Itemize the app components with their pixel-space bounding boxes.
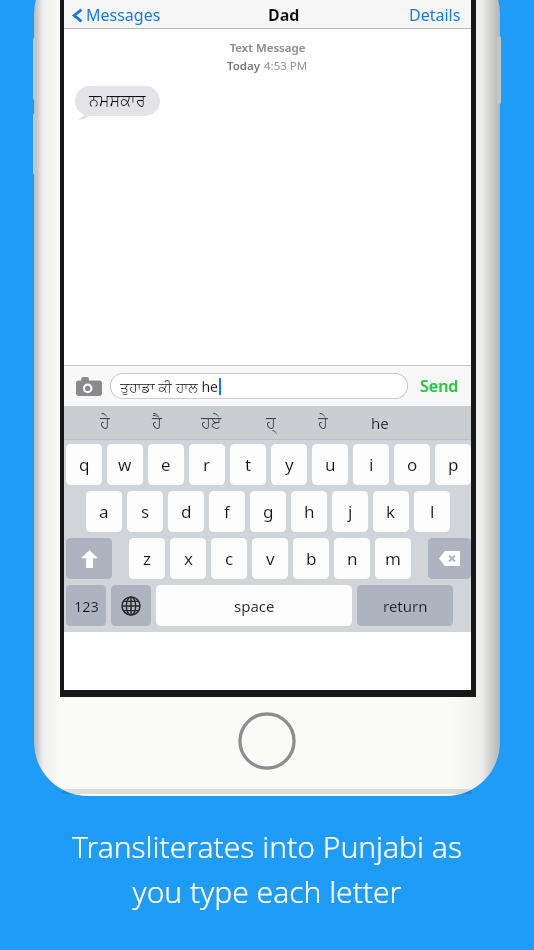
staticText: w xyxy=(118,453,132,476)
button[interactable]: r xyxy=(189,444,225,485)
button[interactable]: f xyxy=(209,491,245,532)
staticText: c xyxy=(225,547,234,570)
staticText: ਨਮਸਕਾਰ xyxy=(89,93,146,109)
staticText: a xyxy=(99,500,109,523)
staticText: y xyxy=(285,453,294,476)
button[interactable]: 123 xyxy=(66,585,106,626)
button[interactable]: ਹਏ xyxy=(190,406,232,440)
button[interactable]: Delete xyxy=(428,538,471,579)
staticText: h xyxy=(304,500,315,523)
staticText: ਹਏ xyxy=(201,415,222,431)
staticText: z xyxy=(143,547,151,570)
button[interactable]: w xyxy=(107,444,143,485)
staticText: Send xyxy=(420,375,459,397)
staticText: Messages xyxy=(86,4,161,26)
staticText: i xyxy=(369,453,374,476)
staticText: e xyxy=(161,453,171,476)
staticText: g xyxy=(263,500,274,523)
staticText: f xyxy=(224,500,230,523)
button[interactable]: ਹੇ xyxy=(84,406,126,440)
staticText: s xyxy=(141,500,150,523)
button[interactable]: ਹੇ xyxy=(302,406,344,440)
button[interactable]: o xyxy=(394,444,430,485)
staticText: v xyxy=(266,547,275,570)
button[interactable]: e xyxy=(148,444,184,485)
staticText: x xyxy=(184,547,193,570)
button[interactable]: z xyxy=(129,538,165,579)
staticText: he xyxy=(371,413,389,433)
staticText: r xyxy=(203,453,211,476)
button[interactable]: ਤੁਹਾਡਾ ਕੀ ਹਾਲ he xyxy=(110,373,408,399)
button[interactable]: Send xyxy=(416,371,463,401)
staticText: m xyxy=(385,547,401,570)
button[interactable]: d xyxy=(168,491,204,532)
button[interactable]: v xyxy=(252,538,288,579)
staticText: Details xyxy=(409,4,461,26)
staticText: Transliterates into Punjabi as you type … xyxy=(72,826,462,912)
button[interactable]: he xyxy=(356,406,404,440)
staticText: n xyxy=(347,547,358,570)
button[interactable]: u xyxy=(312,444,348,485)
button[interactable]: s xyxy=(127,491,163,532)
button[interactable]: g xyxy=(250,491,286,532)
button[interactable]: t xyxy=(230,444,266,485)
staticText: 123 xyxy=(74,596,99,616)
staticText: o xyxy=(407,453,418,476)
button[interactable]: y xyxy=(271,444,307,485)
staticText: Dad xyxy=(268,4,300,26)
staticText: k xyxy=(386,500,396,523)
staticText: ਹੇ xyxy=(318,415,328,431)
button[interactable]: i xyxy=(353,444,389,485)
staticText: ਹ੍ xyxy=(266,415,276,431)
button[interactable]: k xyxy=(373,491,409,532)
staticText: t xyxy=(245,453,252,476)
button[interactable]: Details xyxy=(405,4,465,26)
staticText: p xyxy=(448,453,459,476)
button[interactable]: ਹੈ xyxy=(136,406,178,440)
button[interactable]: x xyxy=(170,538,206,579)
button[interactable]: p xyxy=(435,444,471,485)
button[interactable]: n xyxy=(334,538,370,579)
button[interactable]: j xyxy=(332,491,368,532)
staticText: u xyxy=(325,453,336,476)
button[interactable]: Camera xyxy=(72,371,106,401)
button[interactable]: q xyxy=(66,444,102,485)
staticText: ਹੇ xyxy=(100,415,110,431)
staticText: q xyxy=(79,453,90,476)
staticText: b xyxy=(306,547,317,570)
button[interactable]: a xyxy=(86,491,122,532)
button[interactable]: Messages xyxy=(70,4,164,26)
staticText: 4:53 PM xyxy=(264,58,308,74)
staticText: space xyxy=(234,596,275,616)
button[interactable]: c xyxy=(211,538,247,579)
staticText: return xyxy=(383,596,428,616)
button[interactable]: return xyxy=(357,585,453,626)
staticText: d xyxy=(181,500,192,523)
staticText: ਤੁਹਾਡਾ ਕੀ ਹਾਲ he xyxy=(120,377,218,396)
button[interactable]: Next keyboard xyxy=(111,585,151,626)
staticText: j xyxy=(348,500,353,523)
button[interactable]: b xyxy=(293,538,329,579)
staticText: Text Message xyxy=(64,40,471,56)
button[interactable]: space xyxy=(156,585,352,626)
button[interactable]: h xyxy=(291,491,327,532)
button[interactable]: Shift xyxy=(66,538,112,579)
button[interactable]: l xyxy=(414,491,450,532)
staticText: ਹੈ xyxy=(152,415,162,431)
staticText: Today xyxy=(227,58,264,74)
staticText: l xyxy=(430,500,435,523)
button[interactable]: m xyxy=(375,538,411,579)
button[interactable]: ਹ੍ xyxy=(250,406,292,440)
button[interactable]: ਨਮਸਕਾਰ xyxy=(75,86,160,116)
